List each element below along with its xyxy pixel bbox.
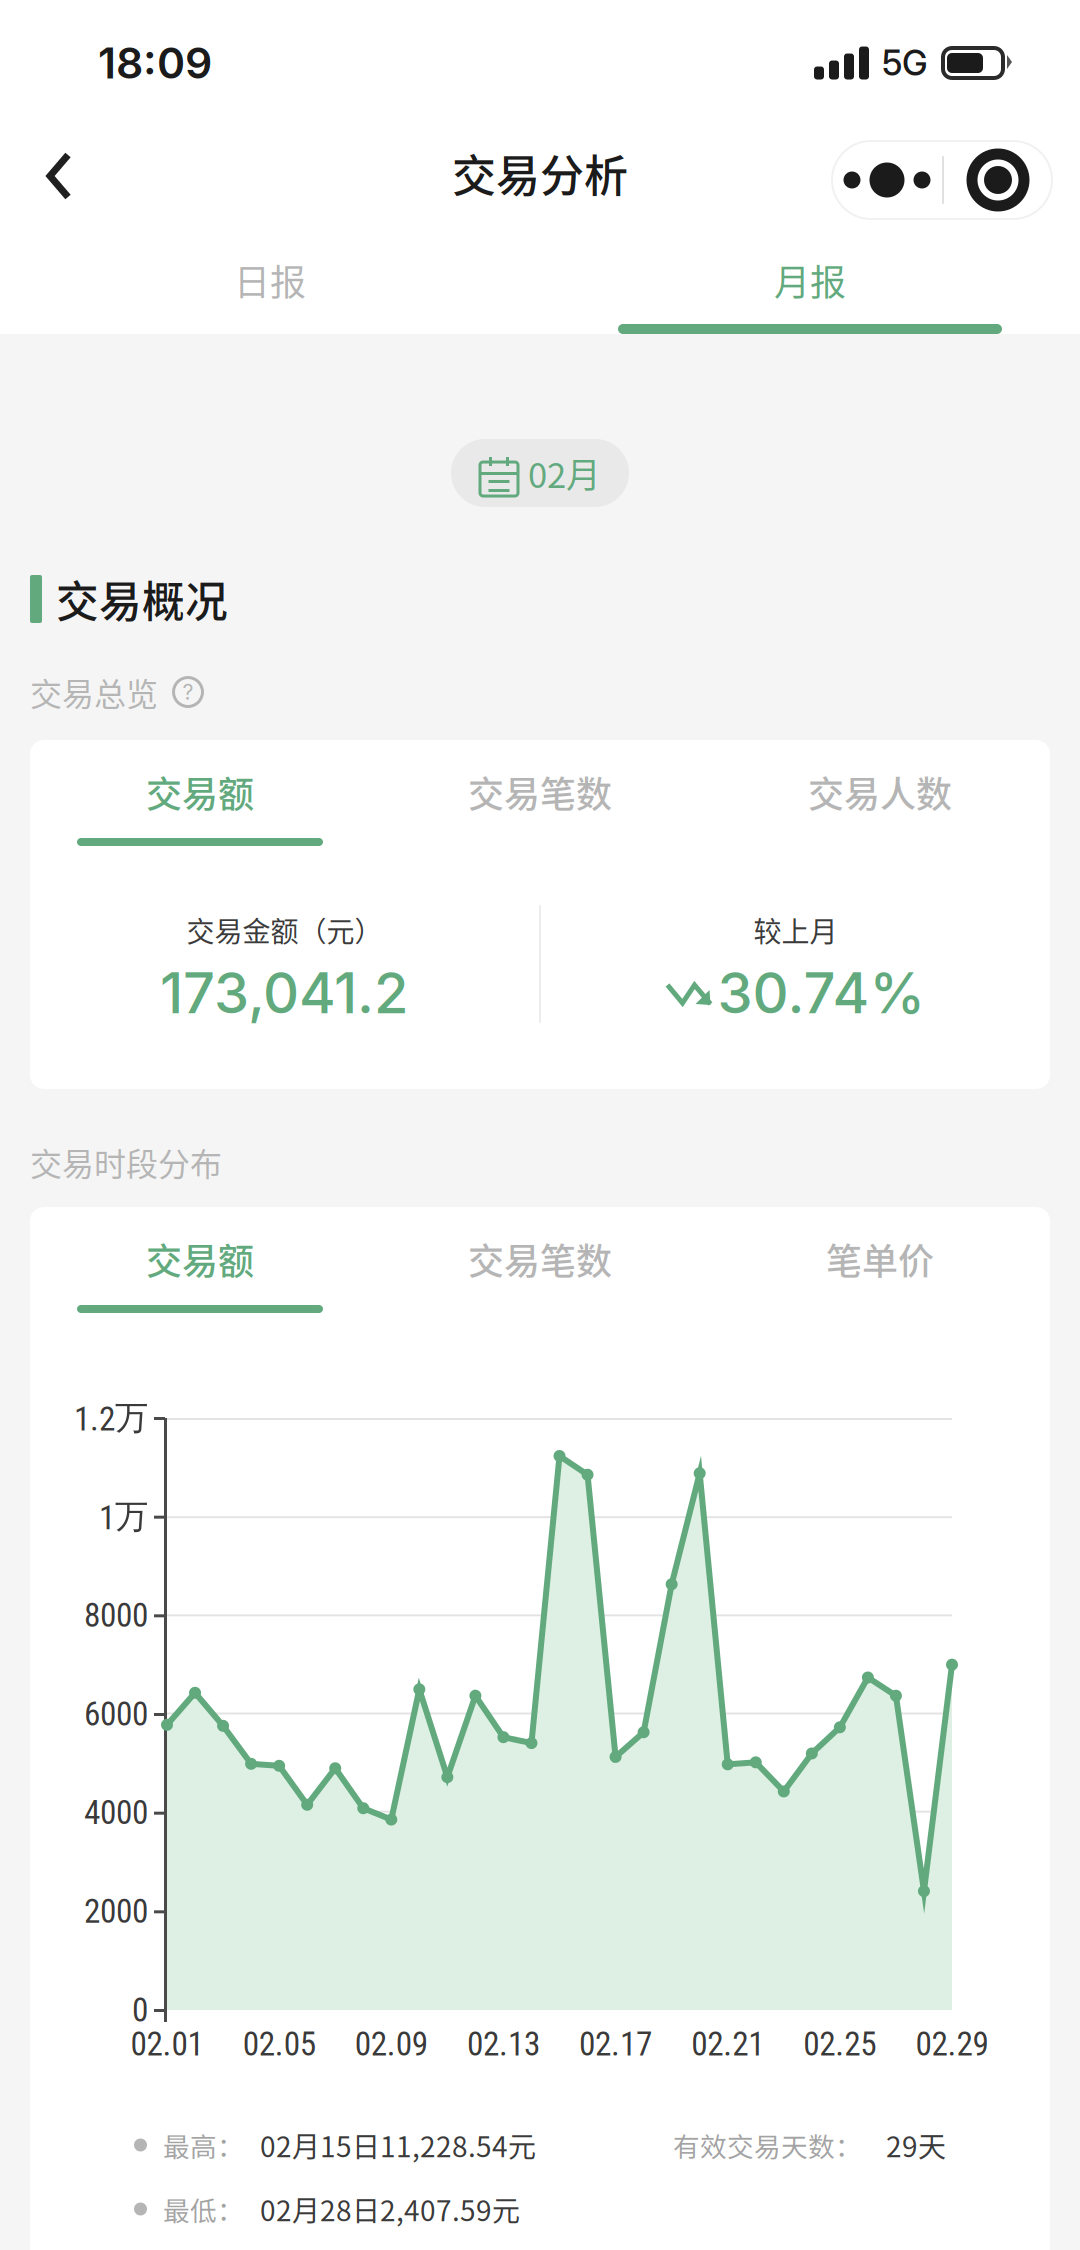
staticText: 交易时段分布 — [30, 1139, 222, 1185]
button[interactable]: 交易额 — [30, 766, 370, 846]
staticText: 02月28日2,407.59元 — [260, 2189, 520, 2229]
staticText: 交易分析 — [452, 141, 628, 205]
button[interactable]: 月报 — [540, 234, 1080, 334]
staticText: 交易金额（元） — [186, 910, 382, 950]
staticText: 有效交易天数： — [673, 2126, 862, 2164]
button[interactable]: 交易额 — [30, 1233, 370, 1313]
staticText: 交易笔数 — [468, 1233, 612, 1285]
staticText: 月报 — [774, 254, 846, 306]
staticText: 02.29 — [915, 2024, 988, 2064]
staticText: 较上月 — [753, 910, 837, 950]
staticText: 02.05 — [243, 2024, 316, 2064]
button[interactable]: 02月 — [451, 439, 629, 507]
staticText: 173,041.2 — [160, 959, 409, 1027]
staticText: 4000 — [84, 1793, 148, 1832]
button[interactable]: 交易笔数 — [370, 766, 710, 846]
staticText: 02.01 — [130, 2024, 203, 2064]
staticText: 交易额 — [146, 1233, 254, 1285]
staticText: 8000 — [84, 1596, 148, 1635]
button[interactable]: 交易人数 — [710, 766, 1050, 846]
staticText: 18:09 — [98, 37, 212, 89]
staticText: 日报 — [234, 254, 306, 306]
staticText: 交易人数 — [808, 766, 952, 818]
staticText: 02.21 — [691, 2024, 764, 2064]
button[interactable]: 返回 — [14, 126, 98, 234]
staticText: 2000 — [84, 1892, 148, 1931]
staticText: 02月 — [528, 448, 601, 498]
button[interactable]: 交易笔数 — [370, 1233, 710, 1313]
button[interactable]: 菜单 — [832, 141, 942, 219]
staticText: 最高： — [163, 2126, 244, 2164]
staticText: 02.17 — [579, 2024, 652, 2064]
staticText: 02.13 — [467, 2024, 540, 2064]
staticText: ? — [182, 679, 193, 705]
staticText: 交易概况 — [56, 568, 228, 630]
staticText: 交易笔数 — [468, 766, 612, 818]
button[interactable]: 日报 — [0, 234, 540, 334]
staticText: 29天 — [886, 2125, 946, 2165]
staticText: 笔单价 — [826, 1233, 934, 1285]
staticText: 交易总览 — [30, 669, 158, 715]
staticText: 1万 — [99, 1496, 148, 1538]
staticText: 5G — [882, 42, 928, 84]
staticText: 02.09 — [355, 2024, 428, 2064]
staticText: 6000 — [84, 1694, 148, 1734]
staticText: 0 — [132, 1990, 148, 2030]
button[interactable]: 笔单价 — [710, 1233, 1050, 1313]
staticText: 交易额 — [146, 766, 254, 818]
staticText: 1.2万 — [74, 1397, 148, 1439]
staticText: 30.74% — [717, 959, 925, 1027]
button[interactable]: 关闭 — [944, 141, 1052, 219]
staticText: 02月15日11,228.54元 — [260, 2125, 536, 2165]
staticText: 02.25 — [803, 2024, 876, 2064]
staticText: 最低： — [163, 2190, 244, 2228]
